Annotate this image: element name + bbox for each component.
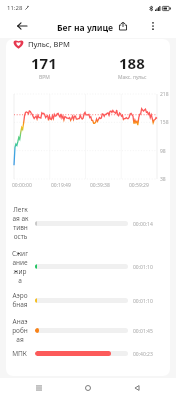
button[interactable]: Share — [113, 16, 133, 36]
staticText: 00:40:23 — [133, 351, 153, 358]
staticText: Легк ая ак тивн ость — [12, 205, 29, 241]
button[interactable] — [35, 264, 128, 269]
button[interactable]: Back — [12, 16, 32, 36]
staticText: 00:59:29 — [129, 182, 149, 189]
staticText: BPM — [39, 74, 50, 81]
button[interactable]: Home — [78, 378, 98, 398]
staticText: 00:00:14 — [133, 221, 153, 228]
staticText: Аэро бная — [12, 291, 28, 309]
button[interactable] — [35, 298, 128, 303]
staticText: Макс. пульс — [118, 74, 147, 81]
staticText: 171 — [31, 53, 57, 73]
staticText: Пульс, ВРМ — [28, 39, 70, 49]
staticText: 00:01:10 — [133, 264, 153, 271]
staticText: 218 — [160, 91, 169, 98]
button[interactable]: More options — [143, 16, 163, 36]
staticText: 188 — [119, 53, 145, 73]
staticText: 00:00:00 — [12, 182, 32, 189]
staticText: 11:28 — [7, 4, 23, 12]
staticText: 00:01:45 — [133, 328, 153, 335]
staticText: Бег на улице — [57, 22, 114, 34]
staticText: 00:39:38 — [90, 182, 110, 189]
staticText: Сжиг ание жир а — [12, 249, 28, 285]
staticText: Анаэ робн ая — [12, 317, 28, 344]
staticText: МПК — [12, 349, 27, 358]
staticText: 00:01:10 — [133, 298, 153, 305]
staticText: 00:19:49 — [51, 182, 71, 189]
button[interactable]: Back — [127, 378, 147, 398]
button[interactable] — [35, 328, 128, 333]
button[interactable] — [35, 351, 128, 356]
button[interactable] — [35, 221, 128, 226]
staticText: 38 — [160, 176, 166, 183]
staticText: 98 — [160, 148, 166, 155]
button[interactable]: Recent apps — [29, 378, 49, 398]
staticText: 158 — [160, 119, 169, 126]
